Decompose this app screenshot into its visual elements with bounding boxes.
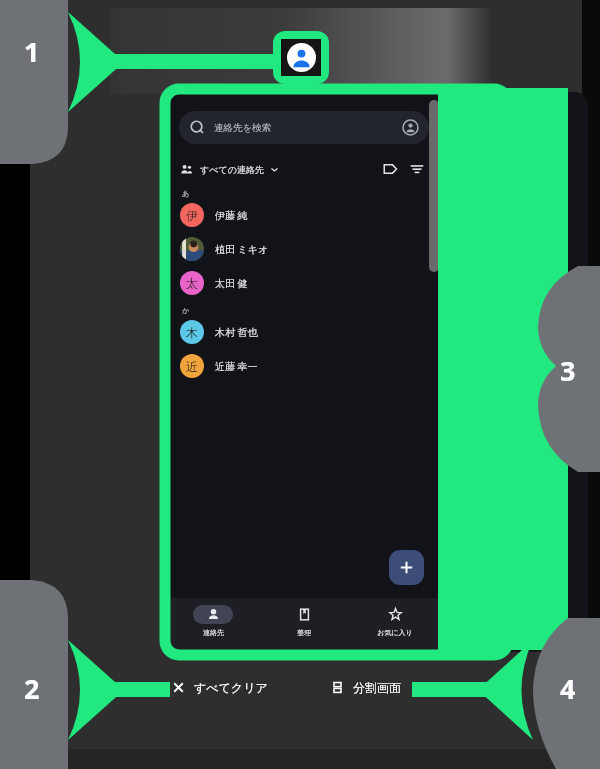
staticText: 太 <box>186 276 198 291</box>
button[interactable]: 連絡先を検索 <box>168 92 440 650</box>
staticText: 木村 哲也 <box>215 325 258 339</box>
button[interactable]: Contacts app <box>281 39 321 76</box>
button[interactable]: 連絡先 <box>168 598 258 650</box>
staticText: すべてクリア <box>194 680 268 695</box>
staticText: 伊 <box>186 208 198 223</box>
staticText: 2 <box>24 670 40 707</box>
staticText: か <box>182 306 190 315</box>
staticText: 分割画面 <box>353 680 401 695</box>
button[interactable]: Labels <box>381 160 399 178</box>
staticText: 近 <box>186 359 198 374</box>
staticText: 整理 <box>297 628 311 637</box>
button[interactable]: 整理 <box>258 598 349 650</box>
staticText: 1 <box>24 33 40 70</box>
button[interactable]: お気に入り <box>349 598 440 650</box>
staticText: 3 <box>560 352 576 389</box>
button[interactable]: すべての連絡先 <box>180 163 279 176</box>
button[interactable]: Add contact <box>389 550 424 585</box>
staticText: 木 <box>186 325 198 340</box>
button[interactable]: 太 <box>168 266 440 300</box>
staticText: 植田 ミキオ <box>215 242 269 256</box>
staticText: 4 <box>560 670 576 707</box>
button[interactable]: 木 <box>168 315 440 349</box>
button[interactable]: 連絡先を検索 <box>179 111 429 144</box>
staticText: 太田 健 <box>215 276 248 290</box>
button[interactable]: 植田 ミキオ <box>168 232 440 266</box>
staticText: 近藤 幸一 <box>215 359 258 373</box>
staticText: 伊藤 純 <box>215 208 248 222</box>
staticText: お気に入り <box>377 628 413 637</box>
staticText: すべての連絡先 <box>200 164 264 175</box>
button[interactable]: 分割画面 <box>331 680 401 695</box>
button[interactable]: 近 <box>168 349 440 383</box>
staticText: 連絡先 <box>203 628 224 637</box>
button[interactable]: Filter <box>408 160 426 178</box>
button[interactable]: 伊 <box>168 198 440 232</box>
button[interactable]: すべてクリア <box>172 680 268 695</box>
staticText: 連絡先を検索 <box>214 122 272 134</box>
staticText: あ <box>182 189 190 198</box>
